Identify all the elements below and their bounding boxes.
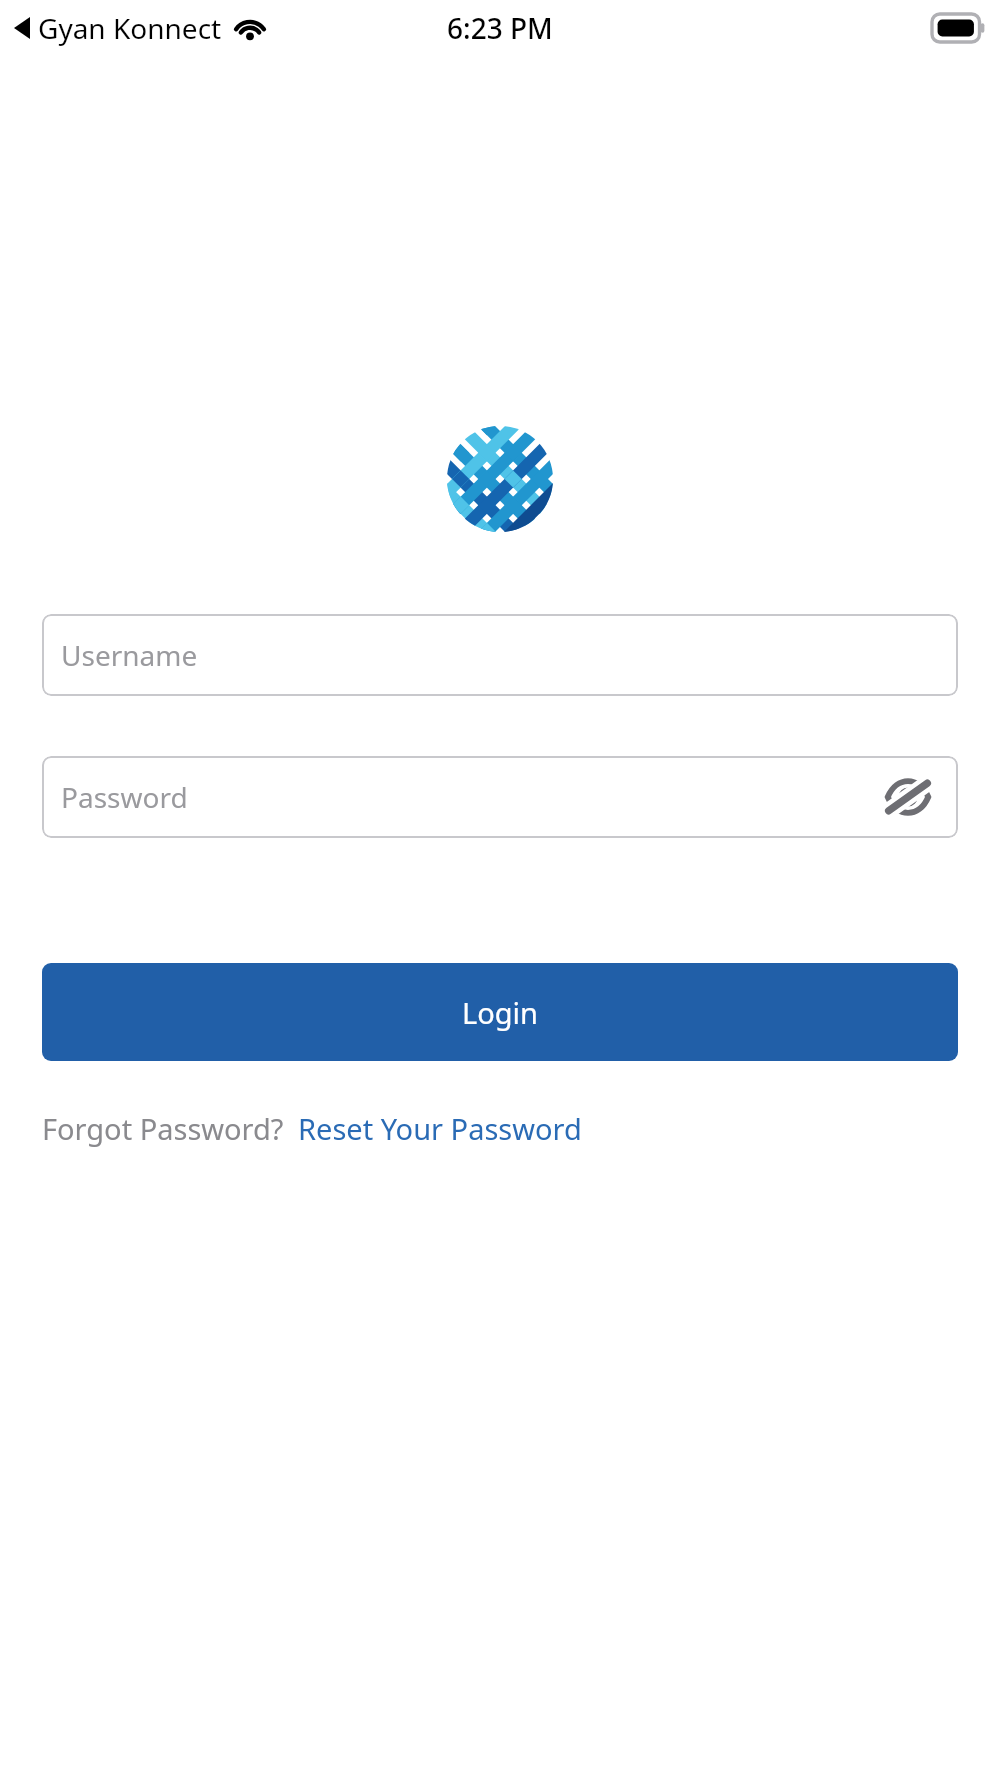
button[interactable]: Show password <box>882 771 934 823</box>
button[interactable]: Reset Your Password <box>298 1109 582 1148</box>
staticText: Username <box>61 636 198 674</box>
staticText: Reset Your Password <box>298 1109 582 1148</box>
staticText: Gyan Konnect <box>38 9 222 47</box>
button[interactable]: Username <box>42 614 958 696</box>
staticText: Forgot Password? <box>42 1109 284 1148</box>
staticText: 6:23 PM <box>447 9 553 47</box>
staticText: Login <box>462 993 538 1032</box>
button[interactable]: Login <box>42 963 958 1061</box>
button[interactable]: Password <box>42 756 958 838</box>
staticText: Password <box>61 778 882 816</box>
